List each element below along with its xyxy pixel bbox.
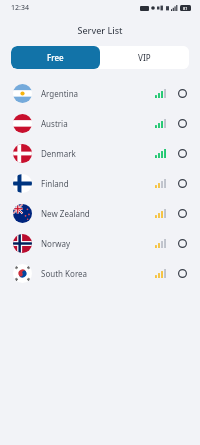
staticText: 12:34 [11,3,29,13]
staticText: Norway [41,238,71,249]
staticText: 81 [183,6,188,11]
staticText: Argentina [41,88,79,99]
button[interactable]: Select South Korea [175,266,189,280]
staticText: Free [47,52,64,63]
button[interactable]: Select Argentina [175,86,189,100]
button[interactable]: New Zealand [0,198,200,228]
button[interactable]: Select Finland [175,176,189,190]
staticText: VIP [138,52,151,63]
button[interactable]: Select Norway [175,236,189,250]
staticText: Server List [77,24,123,36]
staticText: Denmark [41,148,76,159]
button[interactable]: Austria [0,108,200,138]
button[interactable]: Denmark [0,138,200,168]
button[interactable]: Select Denmark [175,146,189,160]
button[interactable]: Norway [0,228,200,258]
button[interactable]: Select New Zealand [175,206,189,220]
staticText: New Zealand [41,208,90,219]
button[interactable]: Free [11,46,100,69]
staticText: South Korea [41,268,88,279]
button[interactable]: Argentina [0,78,200,108]
staticText: Finland [41,178,69,189]
button[interactable]: Select Austria [175,116,189,130]
button[interactable]: VIP [100,46,189,69]
staticText: Austria [41,118,68,129]
button[interactable]: South Korea [0,258,200,288]
button[interactable]: Finland [0,168,200,198]
